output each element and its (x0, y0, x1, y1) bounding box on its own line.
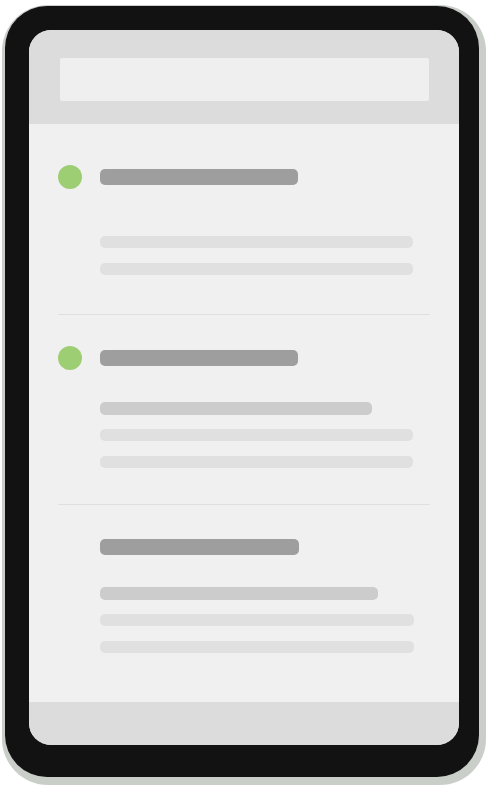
button[interactable] (29, 505, 459, 653)
button[interactable]: Bottom navigation (29, 702, 459, 745)
button[interactable] (29, 124, 459, 315)
button[interactable] (29, 315, 459, 505)
